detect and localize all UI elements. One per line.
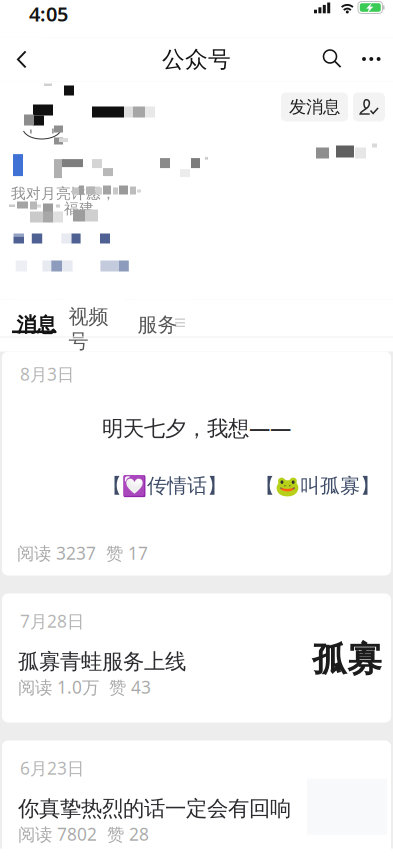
- staticText: 8月3日: [20, 362, 74, 385]
- button[interactable]: More: [362, 49, 381, 68]
- button[interactable]: 消息: [12, 299, 60, 345]
- staticText: 阅读 3237 赞 17: [17, 541, 148, 564]
- staticText: 视频号: [68, 304, 108, 353]
- button[interactable]: 服务: [134, 299, 192, 345]
- button[interactable]: Following: [353, 92, 385, 121]
- staticText: 我对月亮许愿，: [11, 184, 116, 202]
- staticText: 孤寡青蛙服务上线: [18, 648, 186, 675]
- button[interactable]: Back: [0, 37, 44, 81]
- staticText: 孤寡: [312, 638, 382, 681]
- staticText: 服务: [137, 312, 177, 337]
- staticText: 明天七夕，我想——: [102, 413, 291, 442]
- staticText: 6月23日: [20, 756, 84, 779]
- staticText: 【🐸叫孤寡】: [255, 473, 380, 498]
- staticText: 发消息: [289, 96, 340, 118]
- staticText: 阅读 7802 赞 28: [18, 822, 149, 845]
- staticText: 阅读 1.0万 赞 43: [18, 675, 151, 698]
- button[interactable]: 发消息: [281, 92, 348, 121]
- staticText: 【💟传情话】: [102, 473, 227, 498]
- staticText: 7月28日: [20, 609, 84, 632]
- staticText: 4:05: [29, 0, 68, 27]
- staticText: 你真挚热烈的话一定会有回响: [18, 795, 291, 822]
- button[interactable]: 视频号: [66, 299, 124, 345]
- staticText: 消息: [16, 312, 56, 337]
- staticText: 福建: [64, 199, 94, 217]
- button[interactable]: Search: [322, 48, 343, 69]
- staticText: 公众号: [162, 46, 231, 73]
